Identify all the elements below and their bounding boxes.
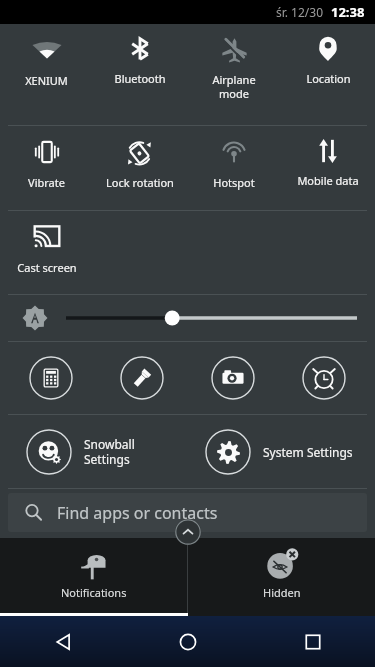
button[interactable]: Cast screen <box>0 211 94 283</box>
staticText: Hotspot <box>213 175 255 190</box>
button[interactable]: Bluetooth <box>93 24 187 94</box>
staticText: Cast screen <box>17 260 77 275</box>
staticText: Mobile data <box>297 173 359 188</box>
button[interactable]: Mobile data <box>281 126 375 196</box>
button[interactable]: Airplane mode <box>187 24 281 109</box>
staticText: Bluetooth <box>114 71 166 86</box>
button[interactable]: Hotspot <box>187 126 281 198</box>
staticText: Snowball Settings <box>84 436 135 467</box>
staticText: Vibrate <box>28 175 65 190</box>
button[interactable]: Snowball Settings <box>0 415 187 488</box>
staticText: Hidden <box>263 585 301 600</box>
button[interactable]: Notifications <box>0 538 187 616</box>
button[interactable]: Calculator <box>29 356 73 400</box>
staticText: System Settings <box>263 444 353 460</box>
button[interactable]: Recents <box>250 616 375 667</box>
button[interactable]: Location <box>281 24 375 94</box>
staticText: 12:38 <box>331 3 365 21</box>
staticText: Airplane mode <box>212 72 256 101</box>
button[interactable]: XENIUM <box>0 24 93 96</box>
button[interactable]: Hidden <box>188 538 375 616</box>
staticText: Find apps or contacts <box>57 502 218 524</box>
button[interactable]: Alarm <box>302 356 346 400</box>
staticText: śr. 12/30 <box>276 4 324 20</box>
button[interactable]: Expand <box>175 519 201 545</box>
staticText: Lock rotation <box>106 175 174 190</box>
button[interactable]: System Settings <box>187 415 375 488</box>
staticText: XENIUM <box>25 73 68 88</box>
button[interactable]: Camera <box>211 356 255 400</box>
button[interactable]: Flashlight <box>120 356 164 400</box>
button[interactable]: Lock rotation <box>93 126 187 198</box>
button[interactable]: Find apps or contacts <box>8 493 367 532</box>
button[interactable] <box>0 295 375 341</box>
button[interactable]: Vibrate <box>0 126 93 198</box>
button[interactable]: Home <box>125 616 250 667</box>
staticText: Notifications <box>61 585 127 600</box>
staticText: Location <box>306 71 351 86</box>
button[interactable]: Back <box>0 616 125 667</box>
